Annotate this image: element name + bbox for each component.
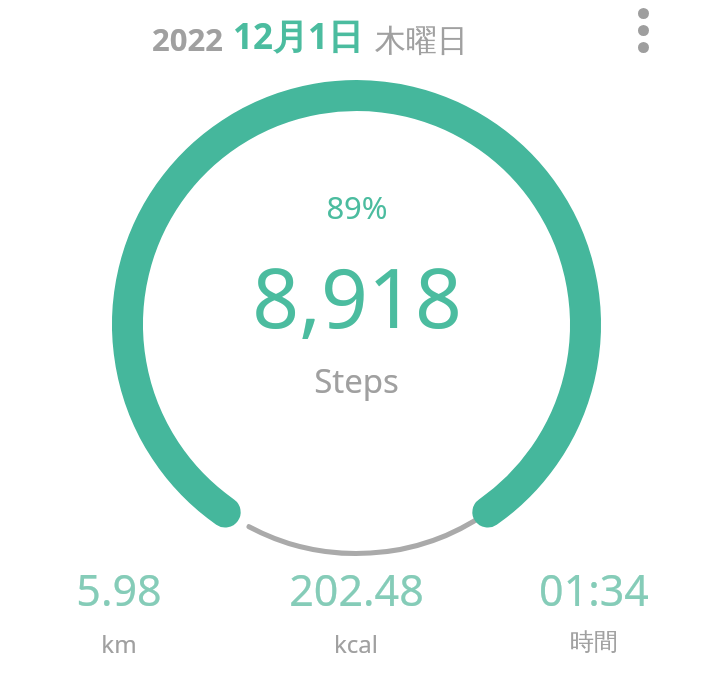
staticText: Steps (314, 358, 399, 403)
staticText: 01:34 (539, 560, 649, 619)
button[interactable]: More options (619, 6, 667, 54)
button[interactable]: 01:34 (475, 558, 713, 659)
staticText: 5.98 (76, 560, 162, 619)
staticText: 202.48 (289, 560, 424, 619)
staticText: 2022 (152, 18, 223, 60)
staticText: km (101, 627, 137, 660)
button[interactable]: 5.98 (0, 558, 237, 662)
button[interactable]: 2022 (152, 12, 468, 60)
button[interactable]: 89% (0, 186, 713, 403)
staticText: kcal (334, 627, 378, 660)
staticText: 89% (326, 186, 388, 228)
staticText: 時間 (570, 627, 618, 657)
staticText: 8,918 (252, 240, 462, 352)
staticText: 木曜日 (375, 21, 468, 60)
button[interactable]: 202.48 (237, 558, 475, 662)
staticText: 12月1日 (233, 12, 364, 60)
other: Step progress 89 percent (112, 80, 601, 569)
